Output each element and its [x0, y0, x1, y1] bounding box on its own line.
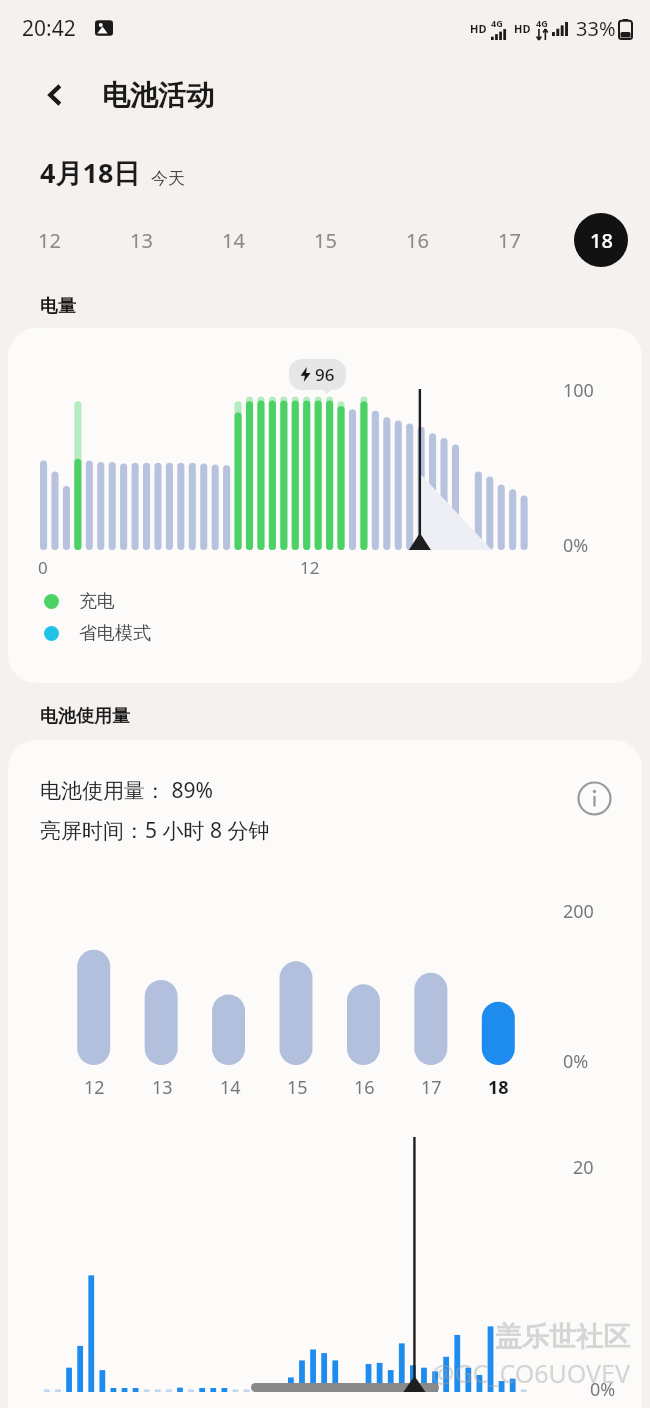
staticText: 电量: [40, 295, 76, 318]
button[interactable]: Info: [572, 776, 616, 820]
staticText: 0: [38, 556, 48, 579]
button[interactable]: 13: [114, 213, 168, 267]
staticText: @GC_CO6UOVEV: [431, 1356, 630, 1390]
staticText: 17: [421, 1075, 442, 1100]
button[interactable]: 14: [206, 213, 260, 267]
button[interactable]: 12: [22, 213, 76, 267]
staticText: 12: [300, 556, 320, 579]
staticText: 20: [573, 1155, 594, 1180]
staticText: 14: [220, 1075, 241, 1100]
staticText: 15: [314, 227, 337, 254]
staticText: 4月18日: [40, 154, 141, 191]
staticText: 16: [354, 1075, 375, 1100]
staticText: 4G: [491, 17, 503, 29]
staticText: 200: [563, 899, 594, 924]
staticText: 盖乐世社区: [495, 1320, 630, 1354]
staticText: 15: [287, 1075, 308, 1100]
staticText: 16: [406, 227, 429, 254]
staticText: 13: [152, 1075, 173, 1100]
button[interactable]: 18: [574, 213, 628, 267]
staticText: 今天: [151, 168, 185, 189]
button[interactable]: 16: [390, 213, 444, 267]
staticText: 14: [222, 227, 245, 254]
staticText: 18: [590, 227, 613, 254]
staticText: 20:42: [22, 14, 76, 43]
staticText: 0%: [563, 533, 589, 558]
staticText: 13: [130, 227, 153, 254]
staticText: 电池使用量: [40, 705, 130, 728]
staticText: HD: [514, 21, 531, 36]
staticText: 电池活动: [102, 78, 214, 113]
staticText: 12: [84, 1075, 105, 1100]
button[interactable]: 15: [298, 213, 352, 267]
staticText: 17: [498, 227, 521, 254]
staticText: 亮屏时间：5 小时 8 分钟: [40, 816, 270, 845]
button[interactable]: 17: [482, 213, 536, 267]
staticText: 电池使用量： 89%: [40, 776, 213, 805]
staticText: 12: [38, 227, 61, 254]
staticText: 96: [315, 363, 335, 386]
button[interactable]: Back: [34, 73, 78, 117]
staticText: 4G: [536, 17, 548, 29]
staticText: 33%: [576, 15, 616, 42]
staticText: 18: [488, 1075, 509, 1100]
button[interactable]: 100: [8, 328, 642, 683]
staticText: 0%: [563, 1049, 589, 1074]
staticText: 充电: [79, 590, 115, 613]
staticText: HD: [470, 21, 487, 36]
staticText: 省电模式: [79, 622, 151, 645]
staticText: 100: [563, 378, 594, 403]
staticText: 0%: [590, 1377, 616, 1402]
